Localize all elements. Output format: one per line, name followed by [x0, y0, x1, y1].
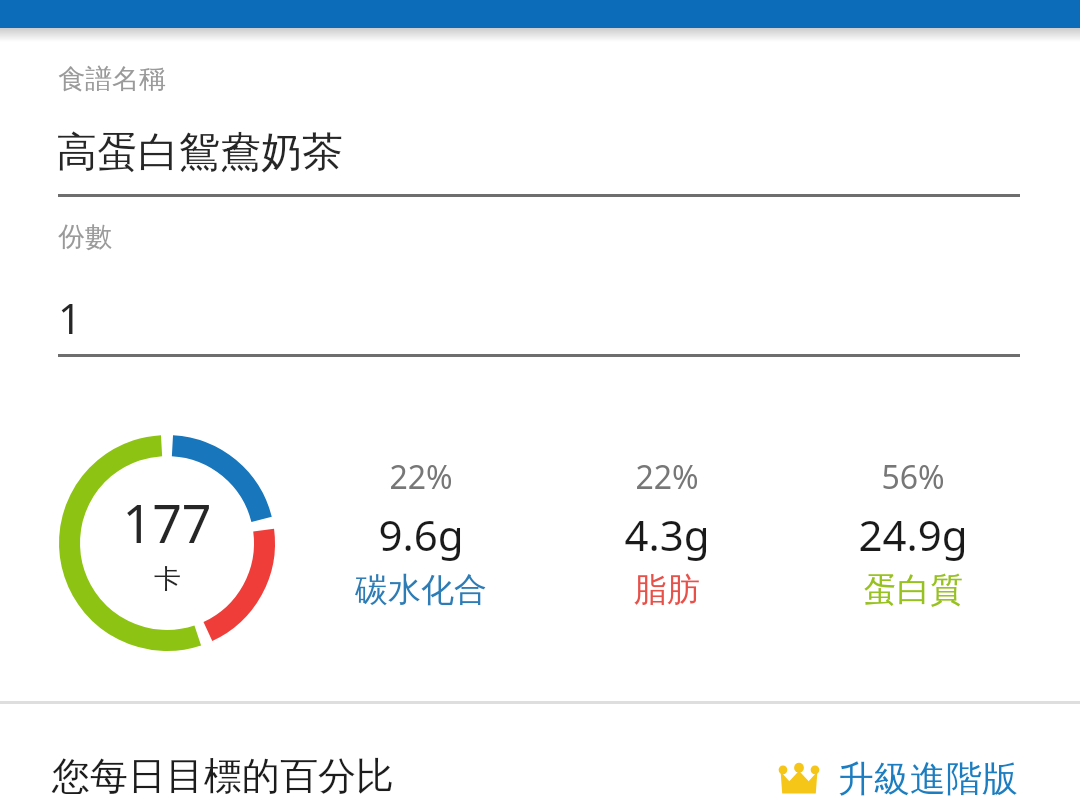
staticText: 9.6g	[378, 506, 464, 563]
staticText: 高蛋白鴛鴦奶茶	[56, 127, 343, 179]
button[interactable]: 56%	[798, 455, 1028, 611]
staticText: 脂肪	[634, 569, 700, 611]
staticText: 56%	[881, 455, 945, 499]
staticText: 24.9g	[858, 506, 968, 563]
staticText: 22%	[389, 455, 453, 499]
staticText: 卡	[154, 562, 181, 596]
button[interactable]: Upgrade to premium	[770, 752, 1024, 805]
staticText: 4.3g	[624, 506, 710, 563]
button[interactable]: 22%	[552, 455, 782, 611]
staticText: 蛋白質	[864, 569, 963, 611]
staticText: 177	[122, 487, 212, 558]
staticText: 食譜名稱	[58, 62, 166, 96]
staticText: 您每日目標的百分比	[52, 752, 394, 800]
other: Upgrade to premium	[776, 760, 822, 798]
staticText: 22%	[635, 455, 699, 499]
staticText: 1	[58, 290, 82, 346]
staticText: 升級進階版	[838, 756, 1018, 801]
staticText: 碳水化合	[355, 569, 487, 611]
staticText: 份數	[58, 220, 112, 254]
button[interactable]: 22%	[306, 455, 536, 611]
button[interactable]: 177	[52, 428, 282, 658]
